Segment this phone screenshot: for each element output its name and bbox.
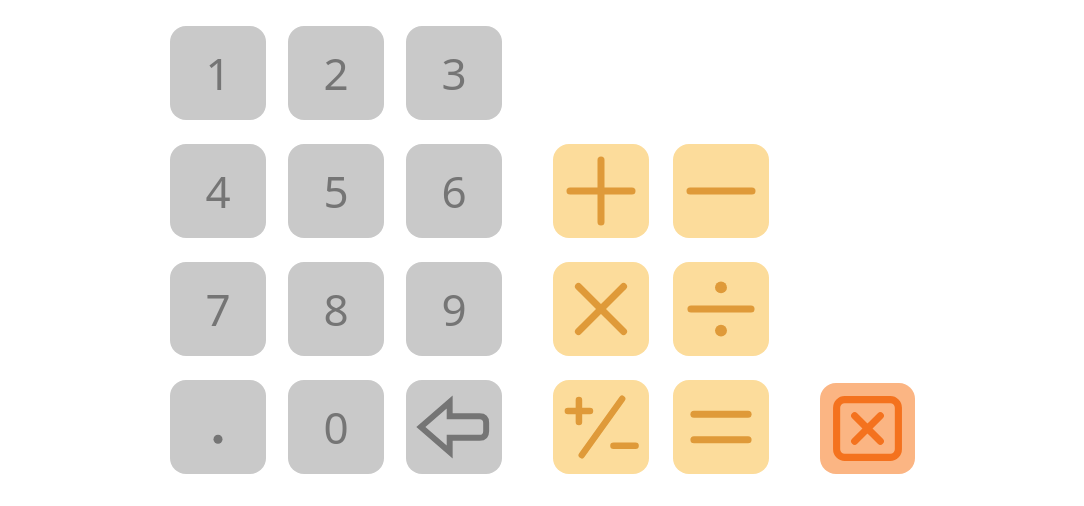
button[interactable]: Divide bbox=[673, 262, 769, 356]
button[interactable]: 5 bbox=[288, 144, 384, 238]
staticText: 0 bbox=[323, 397, 349, 457]
button[interactable]: Plus minus sign bbox=[553, 380, 649, 474]
staticText: 4 bbox=[205, 161, 231, 221]
button[interactable]: 4 bbox=[170, 144, 266, 238]
button[interactable]: Multiply bbox=[553, 262, 649, 356]
staticText: 6 bbox=[441, 161, 467, 221]
staticText: 3 bbox=[441, 43, 467, 103]
button[interactable]: Decimal point bbox=[170, 380, 266, 474]
button[interactable]: Close bbox=[820, 383, 915, 474]
staticText: 1 bbox=[205, 43, 231, 103]
button[interactable]: Equals bbox=[673, 380, 769, 474]
button[interactable]: Backspace bbox=[406, 380, 502, 474]
button[interactable]: 7 bbox=[170, 262, 266, 356]
button[interactable]: Minus bbox=[673, 144, 769, 238]
button[interactable]: 0 bbox=[288, 380, 384, 474]
staticText: 5 bbox=[323, 161, 349, 221]
staticText: 7 bbox=[205, 279, 231, 339]
button[interactable]: 3 bbox=[406, 26, 502, 120]
button[interactable]: 6 bbox=[406, 144, 502, 238]
button[interactable]: 9 bbox=[406, 262, 502, 356]
staticText: 9 bbox=[441, 279, 467, 339]
staticText: 8 bbox=[323, 279, 349, 339]
button[interactable]: 2 bbox=[288, 26, 384, 120]
staticText: 2 bbox=[323, 43, 349, 103]
button[interactable]: 1 bbox=[170, 26, 266, 120]
button[interactable]: 8 bbox=[288, 262, 384, 356]
button[interactable]: Plus bbox=[553, 144, 649, 238]
